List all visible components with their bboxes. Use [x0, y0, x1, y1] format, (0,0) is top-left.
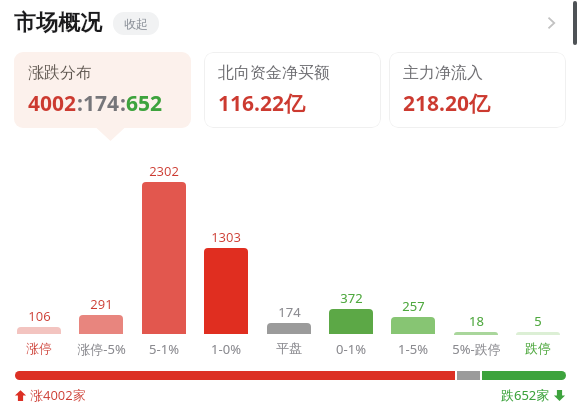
staticText: 跌停: [525, 340, 551, 356]
staticText: 市场概况: [14, 9, 102, 37]
button[interactable]: 展开更多: [534, 6, 568, 40]
staticText: 106: [28, 307, 51, 325]
button[interactable]: [454, 332, 498, 335]
staticText: 5: [534, 312, 542, 330]
staticText: 116.22亿: [218, 89, 305, 118]
staticText: 涨4002家: [30, 386, 86, 404]
button[interactable]: 涨跌分布: [14, 52, 191, 128]
staticText: 372: [340, 289, 363, 307]
other: 上涨: [14, 389, 27, 402]
staticText: 北向资金净买额: [218, 63, 330, 83]
button[interactable]: [142, 182, 186, 334]
staticText: 218.20亿: [403, 89, 490, 118]
staticText: 跌652家: [501, 386, 550, 404]
staticText: 收起: [124, 16, 148, 31]
button[interactable]: 主力净流入: [389, 52, 566, 128]
staticText: 5-1%: [149, 340, 179, 358]
staticText: 2302: [149, 162, 179, 180]
staticText: 257: [402, 297, 425, 315]
button[interactable]: 北向资金净买额: [204, 52, 381, 128]
button[interactable]: [267, 323, 311, 334]
staticText: 1303: [211, 228, 241, 246]
other: 下跌: [553, 389, 566, 402]
button[interactable]: [391, 317, 435, 334]
staticText: 涨停-5%: [77, 340, 126, 358]
staticText: 1-5%: [398, 340, 428, 358]
staticText: :: [77, 89, 83, 118]
staticText: 652: [126, 89, 163, 118]
staticText: 174: [278, 303, 301, 321]
staticText: 主力净流入: [403, 63, 483, 83]
button[interactable]: [516, 332, 560, 335]
button[interactable]: 收起: [113, 12, 159, 35]
staticText: :: [120, 89, 126, 118]
staticText: 涨跌分布: [28, 63, 92, 83]
staticText: 5%-跌停: [452, 340, 501, 358]
staticText: 平盘: [276, 340, 302, 356]
button[interactable]: [204, 248, 248, 334]
staticText: 174: [83, 89, 120, 118]
staticText: 291: [90, 295, 113, 313]
staticText: 18: [469, 312, 484, 330]
button[interactable]: [79, 315, 123, 334]
staticText: 1-0%: [211, 340, 241, 358]
button[interactable]: [17, 327, 61, 334]
staticText: 4002: [28, 89, 77, 118]
staticText: 0-1%: [336, 340, 366, 358]
button[interactable]: [329, 309, 373, 334]
staticText: 涨停: [26, 340, 52, 356]
